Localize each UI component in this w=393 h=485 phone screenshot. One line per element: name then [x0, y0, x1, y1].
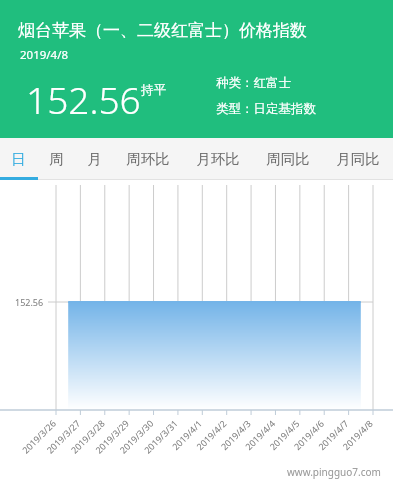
- button[interactable]: 周环比: [113, 138, 183, 180]
- button[interactable]: 月: [75, 138, 113, 180]
- staticText: 月环比: [196, 150, 240, 168]
- staticText: 烟台苹果（一、二级红富士）价格指数: [18, 20, 307, 41]
- staticText: 152.56: [26, 74, 141, 124]
- staticText: 种类：红富士: [216, 75, 291, 91]
- staticText: 周同比: [266, 150, 310, 168]
- staticText: 周: [49, 150, 64, 168]
- staticText: 周环比: [126, 150, 170, 168]
- staticText: 日: [11, 150, 26, 168]
- button[interactable]: 周: [37, 138, 75, 180]
- button[interactable]: 月同比: [323, 138, 393, 180]
- button[interactable]: 周同比: [253, 138, 323, 180]
- staticText: 月: [87, 150, 102, 168]
- staticText: 2019/4/8: [20, 47, 69, 63]
- button[interactable]: 月环比: [183, 138, 253, 180]
- staticText: 月同比: [336, 150, 380, 168]
- staticText: 持平: [141, 82, 166, 98]
- button[interactable]: 日: [0, 138, 37, 180]
- staticText: 类型：日定基指数: [216, 101, 316, 117]
